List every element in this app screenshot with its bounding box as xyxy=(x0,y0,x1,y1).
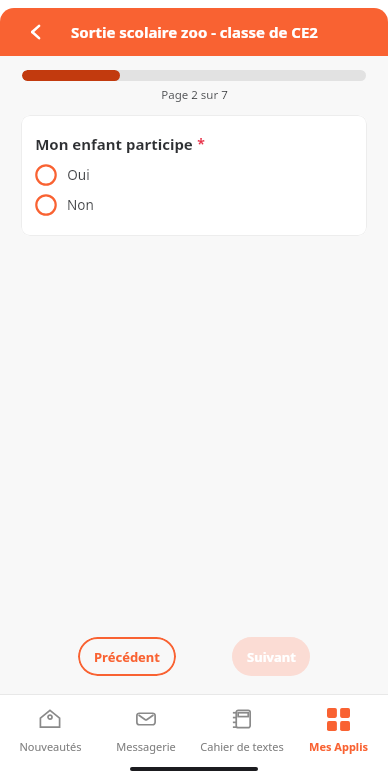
button[interactable]: Retour xyxy=(14,10,58,54)
button[interactable]: Précédent xyxy=(78,637,176,676)
button[interactable]: Suivant xyxy=(232,637,310,676)
button[interactable]: Oui xyxy=(35,164,353,186)
staticText: Non xyxy=(67,196,94,214)
staticText: Oui xyxy=(67,166,90,184)
staticText: Mes Applis xyxy=(309,739,368,754)
staticText: Page 2 sur 7 xyxy=(161,87,228,103)
staticText: * xyxy=(197,134,205,153)
button[interactable]: Cahier de textes xyxy=(196,703,288,756)
staticText: Suivant xyxy=(247,648,296,666)
staticText: Mon enfant participe xyxy=(35,134,193,154)
staticText: Précédent xyxy=(94,648,160,666)
staticText: Messagerie xyxy=(116,739,176,754)
staticText: Cahier de textes xyxy=(200,739,284,754)
staticText: Sortie scolaire zoo - classe de CE2 xyxy=(71,22,318,42)
button[interactable]: Messagerie xyxy=(100,703,192,756)
button[interactable]: Non xyxy=(35,194,353,216)
staticText: Nouveautés xyxy=(19,739,82,754)
button[interactable]: Nouveautés xyxy=(4,703,96,756)
button[interactable]: Mes Applis xyxy=(292,703,384,756)
